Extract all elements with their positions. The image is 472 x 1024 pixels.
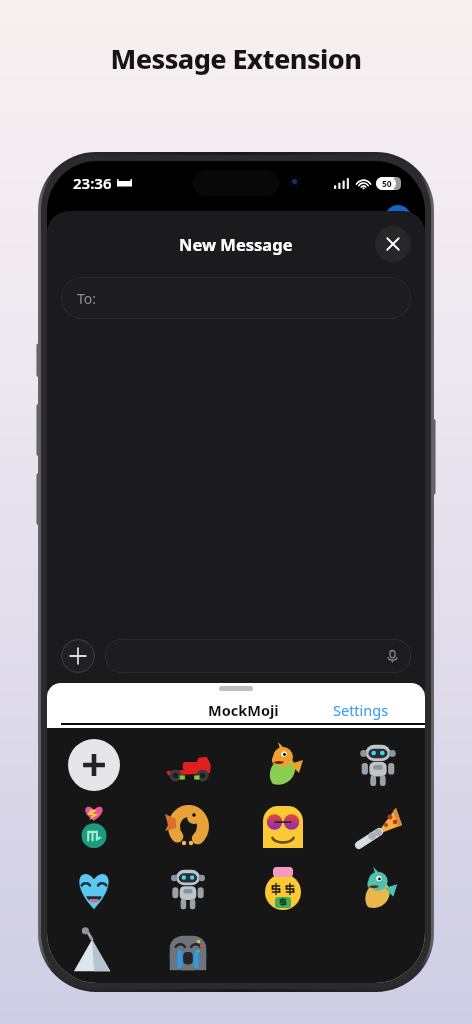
button[interactable] <box>47 796 141 858</box>
button[interactable] <box>47 734 141 796</box>
button[interactable]: Settings <box>333 700 389 720</box>
button[interactable] <box>141 796 235 858</box>
button[interactable] <box>105 639 411 673</box>
button[interactable]: To: <box>61 277 411 319</box>
staticText: 50 <box>382 178 392 190</box>
button[interactable] <box>330 858 425 920</box>
button[interactable] <box>235 858 330 920</box>
button[interactable] <box>141 858 235 920</box>
staticText: To: <box>77 289 97 308</box>
button[interactable]: Close <box>375 226 411 262</box>
button[interactable]: MockMoji <box>61 700 425 725</box>
staticText: 23:36 <box>73 173 112 193</box>
button[interactable] <box>47 920 141 982</box>
button[interactable] <box>330 734 425 796</box>
button[interactable]: Add attachment <box>61 639 95 673</box>
button[interactable] <box>141 920 235 982</box>
button[interactable] <box>235 796 330 858</box>
staticText: MockMoji <box>208 700 279 720</box>
button[interactable] <box>235 734 330 796</box>
button[interactable] <box>141 734 235 796</box>
staticText: Message Extension <box>0 40 472 77</box>
staticText: New Message <box>179 233 293 255</box>
button[interactable] <box>330 920 425 982</box>
button[interactable] <box>330 796 425 858</box>
button[interactable] <box>47 858 141 920</box>
